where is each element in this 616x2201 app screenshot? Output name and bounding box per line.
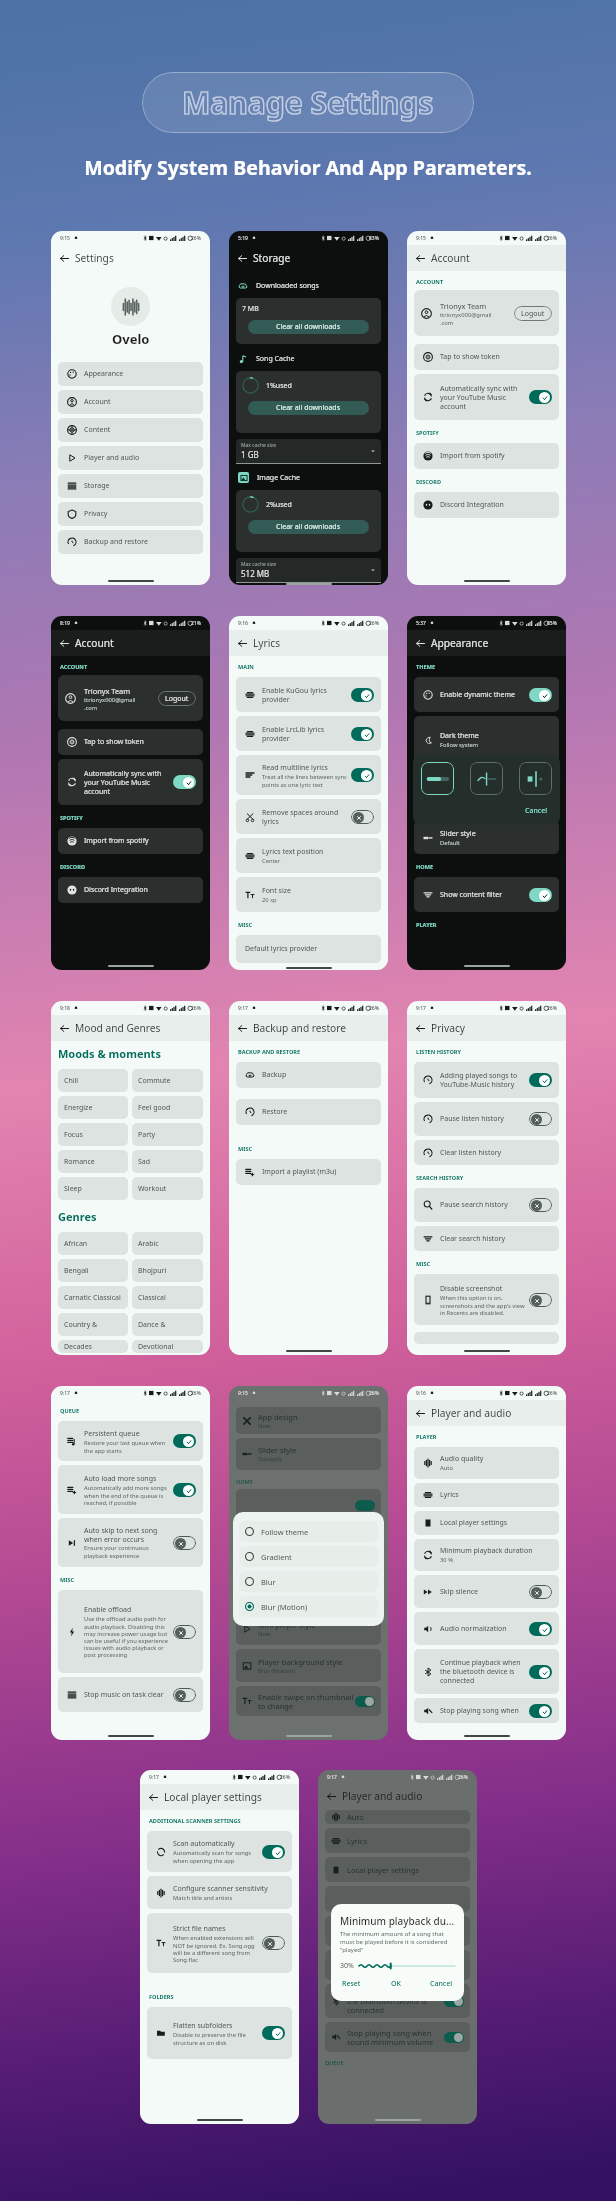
button[interactable]: Toggle off: [173, 1625, 196, 1639]
button[interactable]: Toggle off: [529, 1585, 552, 1599]
button[interactable]: Toggle on: [173, 1483, 196, 1497]
button[interactable]: Mini player style: [236, 1612, 381, 1645]
button[interactable]: Toggle off: [351, 810, 374, 824]
button[interactable]: Pause listen history: [414, 1102, 559, 1136]
button[interactable]: Strict file names: [147, 1913, 292, 1973]
button[interactable]: Feel good: [132, 1096, 203, 1119]
button[interactable]: Account: [58, 390, 203, 414]
button[interactable]: Toggle on: [351, 768, 374, 782]
button[interactable]: Slider style: [236, 1438, 381, 1470]
button[interactable]: Back: [146, 1790, 160, 1804]
button[interactable]: Clear search history: [414, 1226, 559, 1251]
button[interactable]: Player and audio: [58, 446, 203, 470]
button[interactable]: Lyrics text position: [236, 838, 381, 873]
button[interactable]: Back: [324, 1789, 338, 1803]
button[interactable]: Minimum playback duration: [414, 1539, 559, 1571]
button[interactable]: Discord Integration: [58, 877, 203, 903]
button[interactable]: Discord Integration: [414, 492, 559, 518]
button[interactable]: Blur (Motion): [239, 1596, 378, 1617]
button[interactable]: OK: [389, 1977, 403, 1991]
button[interactable]: Auto: [325, 1810, 470, 1824]
button[interactable]: Max cache size: [241, 561, 376, 579]
button[interactable]: Party: [132, 1123, 203, 1146]
button[interactable]: Arabic: [132, 1232, 203, 1255]
button[interactable]: Back: [57, 636, 71, 650]
button[interactable]: Enable KuGou lyrics provider: [236, 677, 381, 712]
button[interactable]: Configure scanner sensitivity: [147, 1876, 292, 1909]
button[interactable]: Import from spotify: [414, 443, 559, 469]
button[interactable]: Clear all downloads: [248, 520, 369, 534]
button[interactable]: Clear all downloads: [248, 320, 369, 334]
button[interactable]: Remove spaces around lyrics: [236, 799, 381, 834]
button[interactable]: Restore: [236, 1099, 381, 1125]
button[interactable]: Toggle on: [529, 390, 552, 404]
button[interactable]: App design: [236, 1407, 381, 1434]
button[interactable]: Carnatic Classical: [58, 1286, 128, 1309]
button[interactable]: Focus: [58, 1123, 128, 1146]
button[interactable]: Clear all downloads: [248, 401, 369, 415]
button[interactable]: Import from spotify: [58, 828, 203, 854]
button[interactable]: Back: [235, 251, 249, 265]
button[interactable]: Gradient: [239, 1546, 378, 1567]
button[interactable]: Back: [413, 1021, 427, 1035]
button[interactable]: Show content filter: [414, 877, 559, 912]
button[interactable]: Toggle on: [529, 688, 552, 702]
button[interactable]: Auto load more songs: [58, 1465, 203, 1514]
button[interactable]: Tap to show token: [414, 344, 559, 370]
button[interactable]: Skip silence: [414, 1575, 559, 1608]
button[interactable]: Stop playing song when sound minimum vol…: [325, 2022, 470, 2052]
button[interactable]: Trionyx Team: [58, 675, 203, 721]
button[interactable]: [325, 1950, 470, 1980]
button[interactable]: Pause search history: [414, 1188, 559, 1222]
button[interactable]: Toggle on: [351, 727, 374, 741]
button[interactable]: Enable LrcLib lyrics provider: [236, 716, 381, 751]
button[interactable]: Lyrics: [414, 1483, 559, 1507]
button[interactable]: Import a playlist (m3u): [236, 1159, 381, 1185]
button[interactable]: Content: [58, 418, 203, 442]
button[interactable]: Appearance: [58, 362, 203, 386]
button[interactable]: Back: [235, 1021, 249, 1035]
button[interactable]: Back: [413, 1406, 427, 1420]
button[interactable]: [325, 1916, 470, 1946]
button[interactable]: Font size: [236, 877, 381, 912]
button[interactable]: Enable swipe on thumbnail to change: [236, 1686, 381, 1716]
button[interactable]: Auto skip to next song when error occurs: [58, 1518, 203, 1567]
button[interactable]: Toggle on: [173, 775, 196, 789]
button[interactable]: Enable dynamic theme: [414, 677, 559, 712]
button[interactable]: Backup: [236, 1062, 381, 1088]
button[interactable]: Bhojpuri: [132, 1259, 203, 1282]
button[interactable]: Cancel: [428, 1977, 455, 1991]
button[interactable]: Chill: [58, 1069, 128, 1092]
button[interactable]: Disable screenshot: [414, 1274, 559, 1325]
button[interactable]: Sad: [132, 1150, 203, 1173]
button[interactable]: Player background style: [236, 1649, 381, 1682]
button[interactable]: Dark theme: [414, 716, 559, 764]
button[interactable]: Toggle on: [262, 1845, 285, 1859]
button[interactable]: African: [58, 1232, 128, 1255]
button[interactable]: Back: [413, 251, 427, 265]
button[interactable]: Lyrics: [325, 1828, 470, 1853]
button[interactable]: Automatically sync with your YouTube Mus…: [58, 759, 203, 805]
button[interactable]: Adding played songs to YouTube-Music his…: [414, 1062, 559, 1098]
button[interactable]: Toggle on: [262, 2026, 285, 2040]
button[interactable]: Cancel: [521, 804, 552, 818]
button[interactable]: [421, 762, 454, 795]
button[interactable]: Privacy: [58, 502, 203, 526]
button[interactable]: Automatically sync with your YouTube Mus…: [414, 374, 559, 420]
button[interactable]: Toggle on: [351, 688, 374, 702]
button[interactable]: Toggle off: [529, 1112, 552, 1126]
button[interactable]: Local player settings: [414, 1511, 559, 1535]
button[interactable]: [470, 762, 503, 795]
button[interactable]: Stop music on task clear: [58, 1677, 203, 1712]
button[interactable]: Romance: [58, 1150, 128, 1173]
button[interactable]: [519, 762, 552, 795]
button[interactable]: Toggle on: [529, 888, 552, 902]
button[interactable]: Toggle on: [173, 1434, 196, 1448]
button[interactable]: Toggle off: [173, 1688, 196, 1702]
button[interactable]: Sleep: [58, 1177, 128, 1200]
button[interactable]: [325, 1886, 470, 1912]
button[interactable]: Energize: [58, 1096, 128, 1119]
button[interactable]: Toggle off: [529, 1198, 552, 1212]
button[interactable]: Toggle off: [262, 1936, 285, 1950]
